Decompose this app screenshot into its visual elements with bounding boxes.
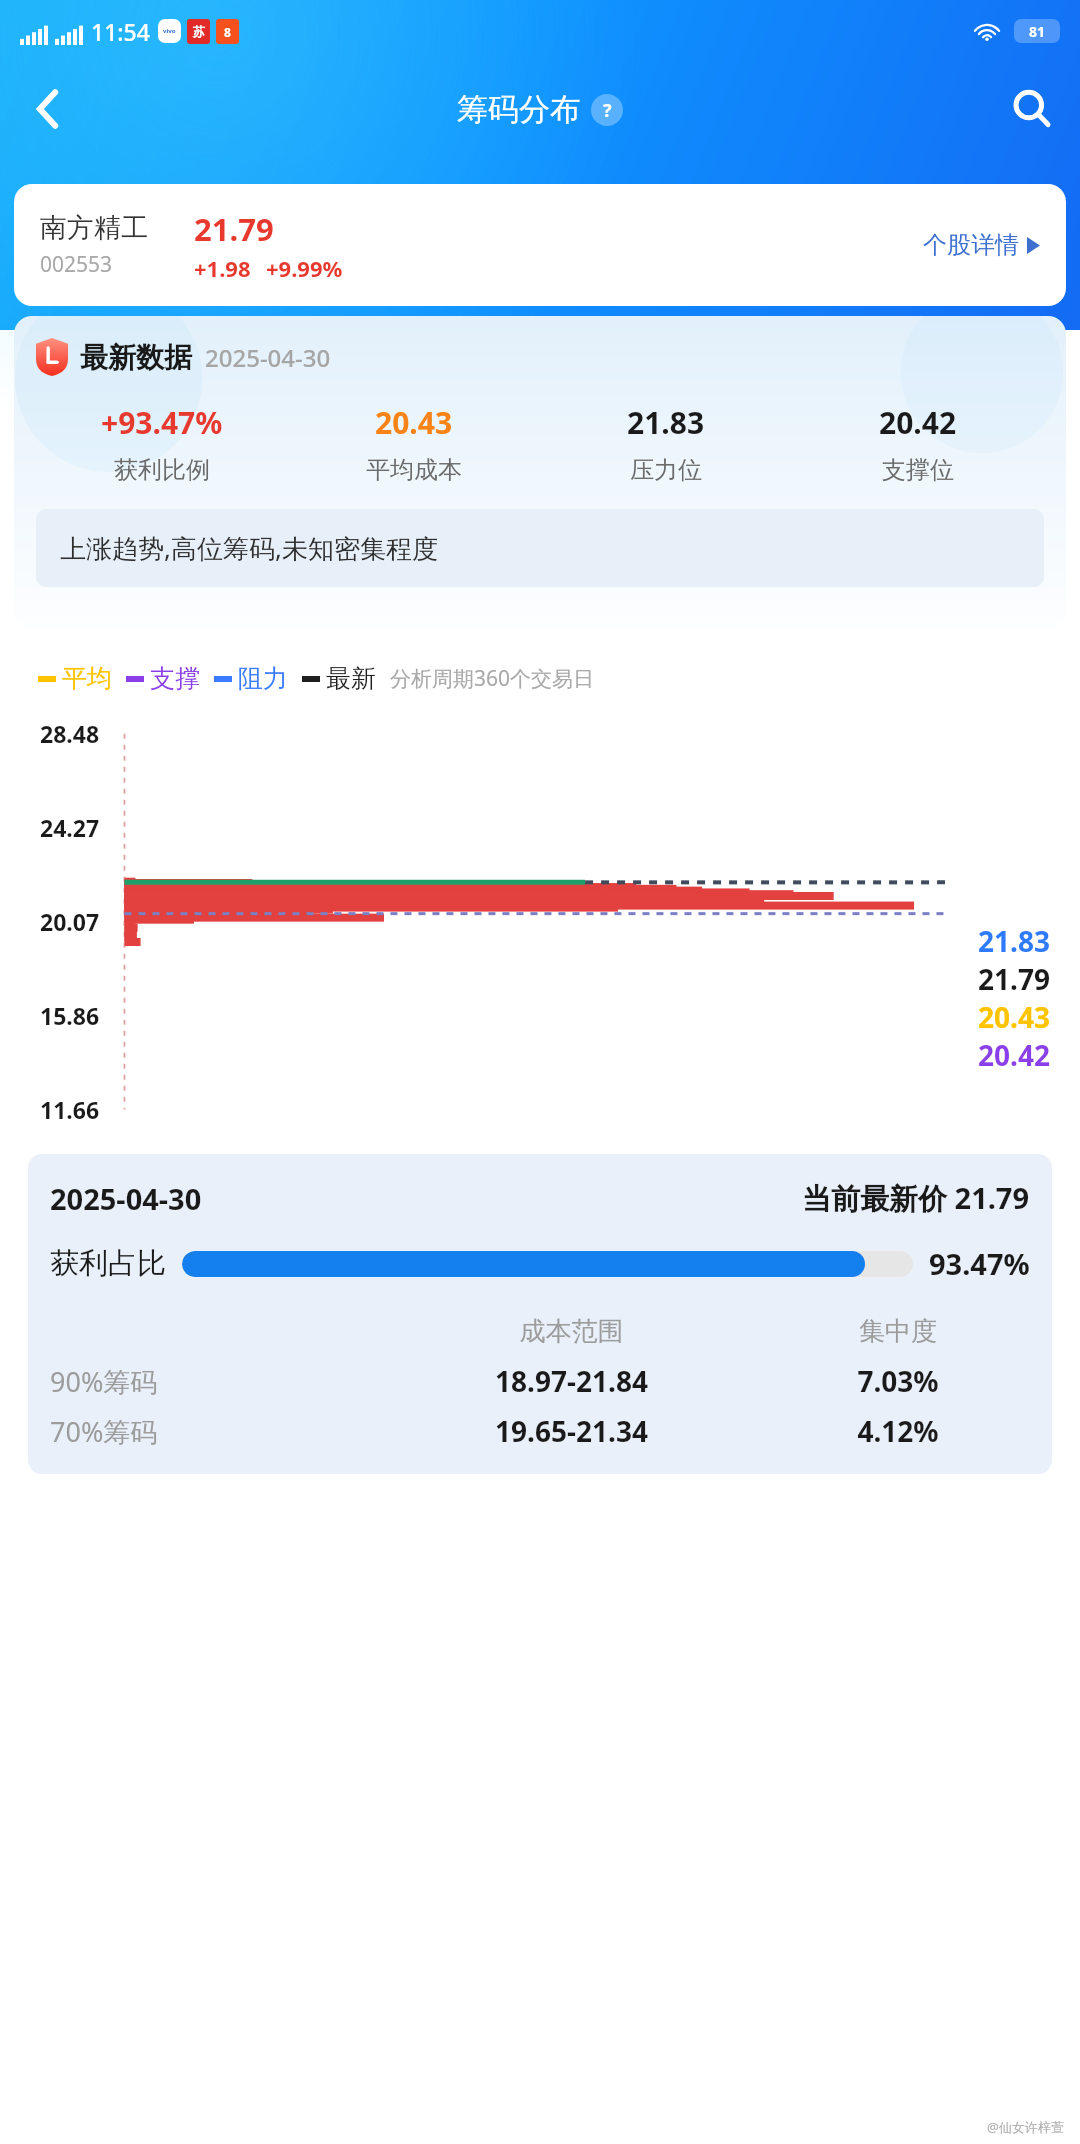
staticText: 20.07	[40, 906, 100, 937]
staticText: 11.66	[40, 1094, 100, 1125]
staticText: 18.97-21.84	[377, 1362, 766, 1400]
staticText: 上涨趋势,高位筹码,未知密集程度	[60, 530, 438, 566]
staticText: 90%筹码	[50, 1363, 377, 1400]
staticText: 集中度	[766, 1315, 1030, 1348]
staticText: 成本范围	[377, 1315, 766, 1348]
staticText: 筹码分布	[457, 90, 581, 129]
staticText: +93.47%	[101, 402, 223, 443]
staticText: 20.43	[375, 402, 453, 443]
staticText: 28.48	[40, 718, 100, 749]
staticText: 93.47%	[929, 1244, 1030, 1283]
staticText: 15.86	[40, 1000, 100, 1031]
button[interactable]: Back	[18, 79, 78, 139]
staticText: @仙女许梓萱	[987, 2118, 1064, 2136]
staticText: 20.43	[978, 998, 1050, 1036]
staticText: 支撑位	[882, 455, 954, 485]
staticText: 70%筹码	[50, 1413, 377, 1450]
staticText: 20.42	[978, 1036, 1050, 1074]
staticText: 81	[1029, 22, 1046, 41]
staticText: 压力位	[630, 455, 702, 485]
staticText: 2025-04-30	[205, 341, 331, 374]
staticText: 平均	[62, 663, 112, 694]
staticText: 南方精工	[40, 211, 148, 245]
staticText: 获利占比	[50, 1245, 166, 1282]
staticText: 19.65-21.34	[377, 1412, 766, 1450]
staticText: 21.83	[978, 922, 1050, 960]
staticText: vivo	[163, 27, 176, 35]
staticText: 2025-04-30	[50, 1179, 202, 1218]
staticText: 获利比例	[114, 455, 210, 485]
staticText: 个股详情	[923, 230, 1019, 260]
staticText: 阻力	[238, 663, 288, 694]
staticText: 21.79	[194, 208, 274, 250]
staticText: 分析周期360个交易日	[390, 664, 595, 693]
staticText: 支撑	[150, 663, 200, 694]
staticText: +9.99%	[266, 253, 343, 283]
staticText: 21.83	[627, 402, 705, 443]
staticText: 苏	[193, 24, 205, 39]
staticText: 002553	[40, 250, 113, 279]
staticText: 24.27	[40, 812, 100, 843]
staticText: 20.42	[879, 402, 957, 443]
staticText: 平均成本	[366, 455, 462, 485]
staticText: 最新数据	[80, 340, 192, 375]
staticText: ?	[603, 98, 612, 123]
button[interactable]: 南方精工	[14, 184, 1066, 306]
button[interactable]: Search	[1002, 79, 1062, 139]
staticText: 11:54	[91, 16, 150, 47]
staticText: 当前最新价 21.79	[802, 1178, 1030, 1218]
button[interactable]: Help	[591, 94, 623, 126]
staticText: 21.79	[978, 960, 1050, 998]
staticText: 8	[224, 24, 231, 40]
button[interactable]: 个股详情	[919, 226, 1044, 264]
staticText: 最新	[326, 663, 376, 694]
staticText: +1.98	[194, 253, 251, 283]
staticText: 4.12%	[766, 1412, 1030, 1450]
staticText: 7.03%	[766, 1362, 1030, 1400]
